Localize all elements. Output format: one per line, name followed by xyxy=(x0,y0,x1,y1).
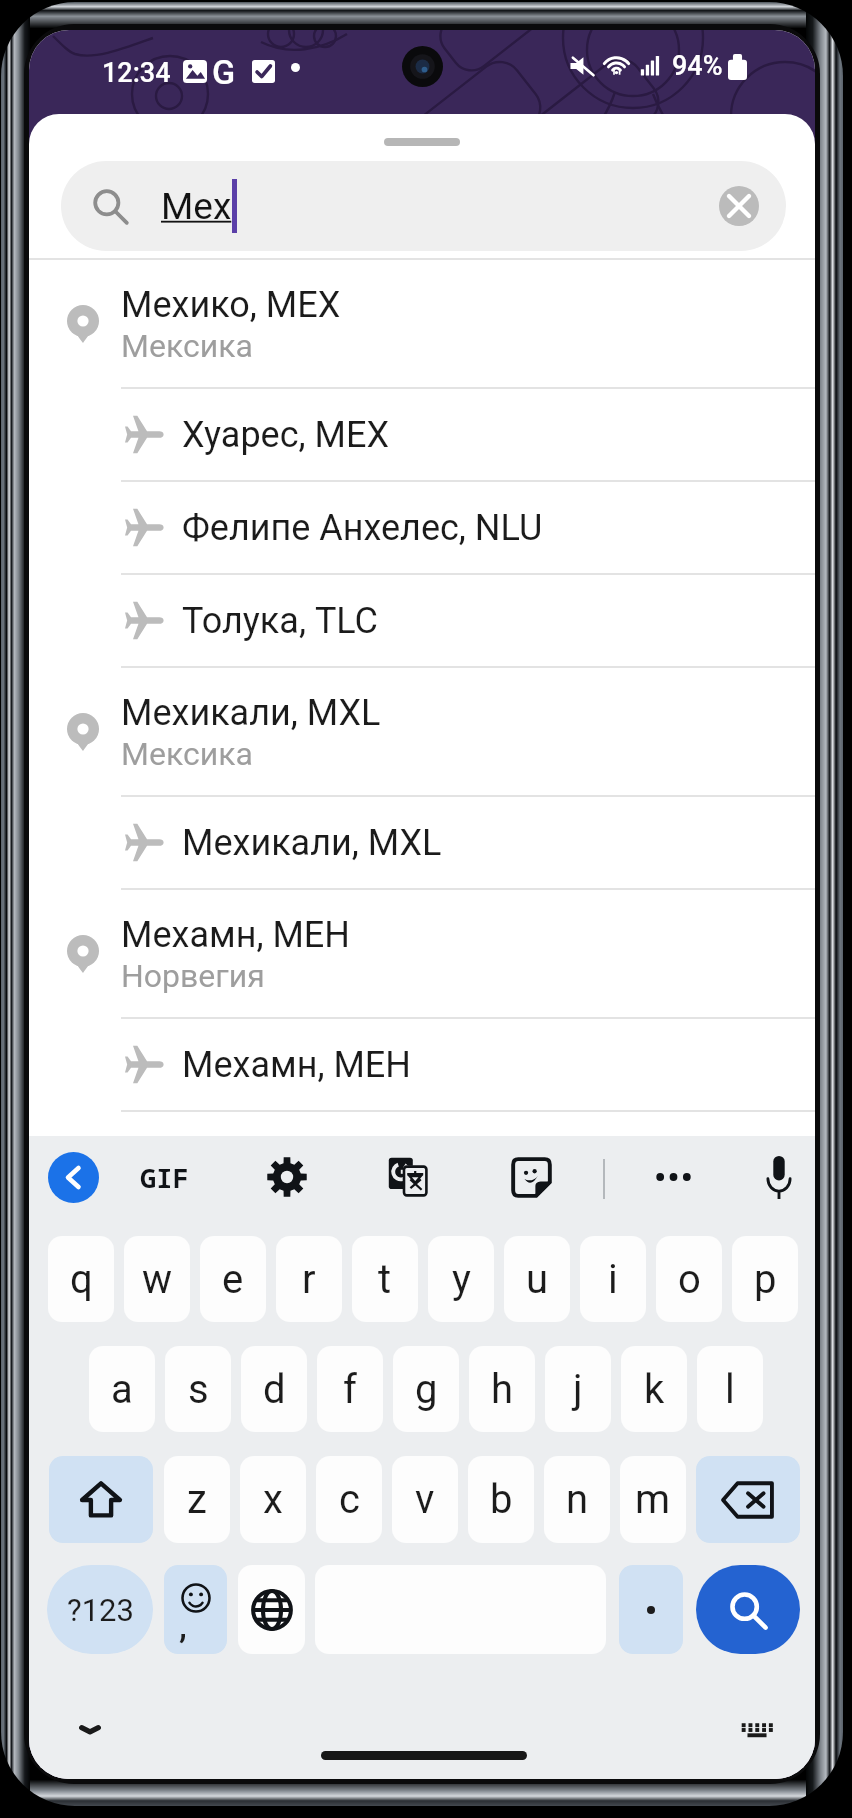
staticText: b xyxy=(490,1476,513,1523)
staticText: ?123 xyxy=(67,1592,134,1628)
button[interactable]: Emoji xyxy=(164,1565,227,1654)
button[interactable]: w xyxy=(124,1236,190,1322)
button[interactable]: i xyxy=(580,1236,646,1322)
staticText: t xyxy=(378,1256,392,1303)
staticText: l xyxy=(725,1366,735,1413)
button[interactable]: Толука, TLC xyxy=(29,575,815,666)
button[interactable]: j xyxy=(545,1346,611,1432)
staticText: o xyxy=(678,1256,701,1303)
button[interactable]: Change language xyxy=(238,1565,305,1654)
button[interactable]: o xyxy=(656,1236,722,1322)
staticText: r xyxy=(302,1256,316,1303)
button[interactable]: Translate xyxy=(388,1157,428,1197)
button[interactable]: m xyxy=(620,1456,686,1543)
staticText: Mex xyxy=(161,185,232,228)
staticText: , xyxy=(179,1608,187,1646)
staticText: v xyxy=(415,1476,435,1523)
button[interactable]: Мехико, MEX xyxy=(29,260,815,387)
staticText: y xyxy=(452,1256,471,1303)
button[interactable]: Keyboard settings xyxy=(267,1157,307,1197)
button[interactable]: Фелипе Анхелес, NLU xyxy=(29,482,815,573)
button[interactable]: Мехикали, MXL xyxy=(29,797,815,888)
staticText: a xyxy=(111,1366,133,1413)
staticText: Мехамн, MEH xyxy=(182,1044,412,1086)
staticText: g xyxy=(415,1366,438,1413)
button[interactable]: Clear search xyxy=(719,186,759,226)
button[interactable]: More options xyxy=(655,1167,692,1187)
button[interactable]: d xyxy=(241,1346,307,1432)
button[interactable]: Хуарес, MEX xyxy=(29,389,815,480)
button[interactable] xyxy=(619,1565,683,1654)
staticText: f xyxy=(343,1366,357,1413)
staticText: i xyxy=(608,1256,618,1303)
button[interactable]: v xyxy=(392,1456,458,1543)
staticText: z xyxy=(187,1476,207,1523)
button[interactable]: h xyxy=(469,1346,535,1432)
staticText: Толука, TLC xyxy=(182,600,379,642)
button[interactable]: Мехамн, MEH xyxy=(29,1019,815,1110)
staticText: u xyxy=(526,1256,549,1303)
staticText: Хуарес, MEX xyxy=(182,414,389,456)
staticText: 94% xyxy=(672,50,723,82)
staticText: x xyxy=(263,1476,283,1523)
staticText: Мексика xyxy=(121,735,253,773)
button[interactable]: Hide keyboard xyxy=(79,1723,101,1736)
button[interactable]: Мехикали, MXL xyxy=(29,668,815,795)
staticText: e xyxy=(222,1256,244,1303)
staticText: s xyxy=(188,1366,209,1413)
staticText: Мехикали, MXL xyxy=(121,692,381,734)
staticText: m xyxy=(635,1476,671,1523)
button[interactable]: y xyxy=(428,1236,494,1322)
button[interactable]: Backspace xyxy=(696,1456,800,1543)
button[interactable]: Switch keyboard xyxy=(740,1717,774,1741)
button[interactable]: q xyxy=(48,1236,114,1322)
staticText: Мехико, MEX xyxy=(121,284,341,326)
button[interactable]: Mex xyxy=(61,161,786,251)
staticText: q xyxy=(70,1256,93,1303)
button[interactable]: c xyxy=(316,1456,382,1543)
button[interactable]: z xyxy=(164,1456,230,1543)
button[interactable]: b xyxy=(468,1456,534,1543)
staticText: j xyxy=(573,1366,583,1413)
button[interactable]: Search xyxy=(696,1565,800,1654)
button[interactable]: p xyxy=(732,1236,798,1322)
button[interactable]: s xyxy=(165,1346,231,1432)
button[interactable]: r xyxy=(276,1236,342,1322)
button[interactable]: a xyxy=(89,1346,155,1432)
button[interactable]: l xyxy=(697,1346,763,1432)
staticText: G xyxy=(212,52,236,92)
button[interactable]: GIF xyxy=(137,1152,192,1203)
staticText: w xyxy=(142,1256,173,1303)
staticText: Мексика xyxy=(121,327,253,365)
button[interactable]: g xyxy=(393,1346,459,1432)
staticText: c xyxy=(339,1476,360,1523)
button[interactable]: Stickers xyxy=(512,1158,551,1197)
staticText: Мехикали, MXL xyxy=(182,822,442,864)
button[interactable]: t xyxy=(352,1236,418,1322)
staticText: h xyxy=(491,1366,514,1413)
staticText: GIF xyxy=(140,1159,189,1196)
button[interactable]: Back xyxy=(48,1152,99,1203)
staticText: Фелипе Анхелес, NLU xyxy=(182,507,543,549)
staticText: d xyxy=(263,1366,286,1413)
button[interactable]: Voice input xyxy=(764,1155,794,1199)
button[interactable]: e xyxy=(200,1236,266,1322)
button[interactable]: u xyxy=(504,1236,570,1322)
staticText: k xyxy=(644,1366,665,1413)
button[interactable]: x xyxy=(240,1456,306,1543)
button[interactable]: Мехамн, MEH xyxy=(29,890,815,1017)
staticText: n xyxy=(566,1476,589,1523)
button[interactable]: ?123 xyxy=(47,1565,153,1654)
button[interactable]: k xyxy=(621,1346,687,1432)
button[interactable]: Shift xyxy=(49,1456,153,1543)
button[interactable]: f xyxy=(317,1346,383,1432)
button[interactable]: n xyxy=(544,1456,610,1543)
staticText: Норвегия xyxy=(121,957,265,995)
staticText: 12:34 xyxy=(102,57,171,89)
staticText: p xyxy=(754,1256,777,1303)
staticText: Мехамн, MEH xyxy=(121,914,351,956)
